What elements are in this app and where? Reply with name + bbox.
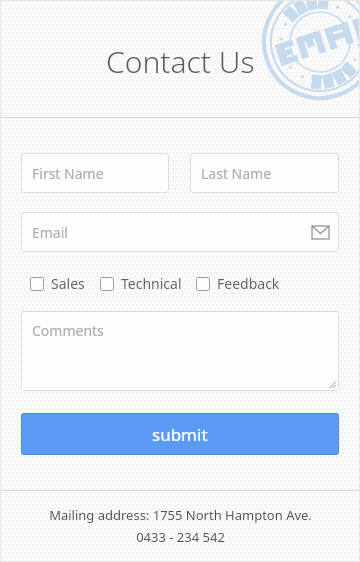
staticText: Mailing address: 1755 North Hampton Ave. xyxy=(49,506,312,524)
button[interactable]: First Name xyxy=(21,153,169,193)
button[interactable]: Email xyxy=(21,212,339,252)
other: Email xyxy=(312,226,329,239)
button[interactable]: Last Name xyxy=(190,153,339,193)
staticText: Sales xyxy=(51,274,85,293)
staticText: Comments xyxy=(32,321,104,340)
staticText: submit xyxy=(152,423,208,446)
staticText: 0433 - 234 542 xyxy=(136,528,225,546)
button[interactable]: Technical xyxy=(100,274,182,293)
button[interactable]: submit xyxy=(21,413,339,455)
button[interactable]: Comments xyxy=(21,311,339,391)
staticText: Technical xyxy=(121,274,182,293)
staticText: Contact Us xyxy=(106,41,255,82)
staticText: Feedback xyxy=(217,274,280,293)
staticText: Email xyxy=(32,223,68,242)
button[interactable]: Feedback xyxy=(196,274,280,293)
staticText: Last Name xyxy=(201,164,272,183)
button[interactable]: Sales xyxy=(30,274,85,293)
staticText: First Name xyxy=(32,164,104,183)
